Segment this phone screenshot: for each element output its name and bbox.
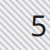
staticText: 5	[30, 5, 47, 44]
